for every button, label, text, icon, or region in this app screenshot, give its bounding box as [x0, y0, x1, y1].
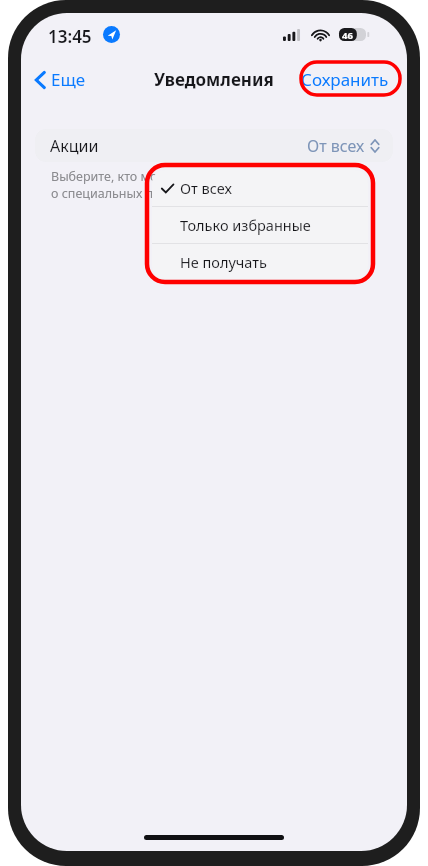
- staticText: От всех: [180, 178, 232, 198]
- staticText: 46: [342, 29, 353, 42]
- staticText: От всех: [307, 135, 365, 157]
- staticText: Не получать: [180, 252, 267, 272]
- staticText: Только избранные: [180, 215, 311, 235]
- button[interactable]: Еще: [31, 64, 90, 95]
- button[interactable]: Акции: [35, 129, 393, 162]
- staticText: Сохранить: [301, 68, 389, 91]
- button[interactable]: От всех: [152, 170, 368, 206]
- button[interactable]: Сохранить: [297, 64, 393, 95]
- button[interactable]: Только избранные: [152, 207, 368, 243]
- button[interactable]: Не получать: [152, 244, 368, 279]
- staticText: Уведомления: [154, 68, 274, 91]
- staticText: о специальных предложениях: [51, 185, 236, 202]
- staticText: 13:45: [48, 25, 92, 48]
- staticText: Акции: [50, 135, 99, 157]
- staticText: Выберите, кто может присылать вам уведом…: [51, 168, 360, 185]
- staticText: Еще: [51, 68, 86, 91]
